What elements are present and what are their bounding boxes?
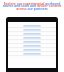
staticText: Explore our experimental authored source… xyxy=(2,1,62,11)
